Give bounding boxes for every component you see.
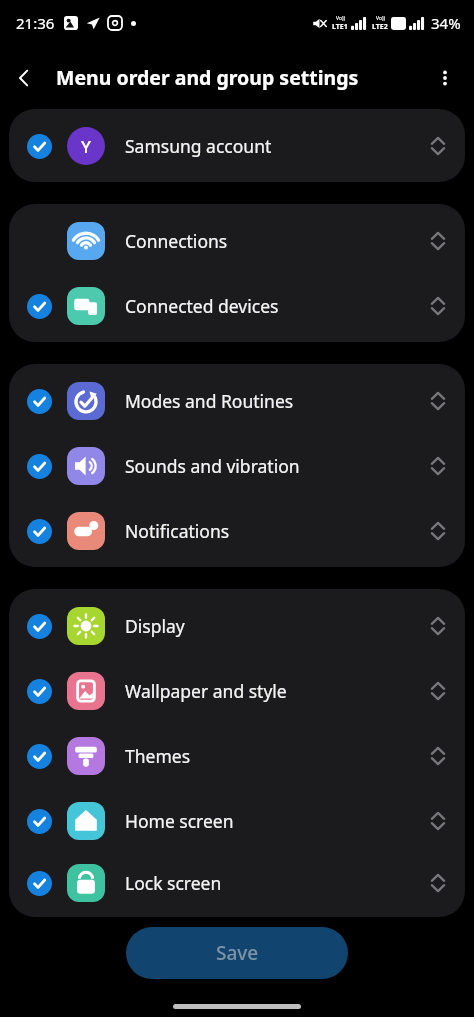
button[interactable]: Notifications: [9, 498, 465, 563]
button[interactable]: Modes and Routines: [9, 368, 465, 433]
button[interactable]: Reorder: [421, 514, 455, 548]
staticText: Connections: [125, 229, 228, 253]
button[interactable]: Home screen: [9, 788, 465, 853]
button[interactable]: Back: [0, 54, 48, 102]
button[interactable]: Reorder: [421, 384, 455, 418]
staticText: Vo)): [376, 15, 385, 22]
button[interactable]: Wallpaper and style: [9, 658, 465, 723]
staticText: LTE2: [372, 22, 388, 32]
staticText: Wallpaper and style: [125, 679, 287, 703]
staticText: Menu order and group settings: [56, 64, 359, 91]
button[interactable]: Reorder: [421, 804, 455, 838]
button[interactable]: Reorder: [421, 866, 455, 900]
staticText: Save: [216, 940, 259, 966]
staticText: Notifications: [125, 519, 230, 543]
button[interactable]: Reorder: [421, 224, 455, 258]
button[interactable]: Connected devices: [9, 273, 465, 338]
button[interactable]: Lock screen: [9, 853, 465, 913]
staticText: Sounds and vibration: [125, 454, 300, 478]
staticText: LTE1: [332, 22, 348, 32]
staticText: 21:36: [16, 13, 55, 33]
button[interactable]: Reorder: [421, 739, 455, 773]
staticText: Y: [81, 135, 91, 158]
staticText: Connected devices: [125, 294, 279, 318]
button[interactable]: Reorder: [421, 289, 455, 323]
button[interactable]: Save: [126, 927, 348, 979]
staticText: Themes: [125, 744, 191, 768]
staticText: Lock screen: [125, 871, 222, 895]
button[interactable]: Themes: [9, 723, 465, 788]
staticText: Home screen: [125, 809, 234, 833]
staticText: Samsung account: [125, 134, 272, 158]
staticText: Modes and Routines: [125, 389, 294, 413]
staticText: 34%: [431, 13, 461, 33]
button[interactable]: Y: [9, 113, 465, 178]
button[interactable]: Reorder: [421, 129, 455, 163]
button[interactable]: Reorder: [421, 674, 455, 708]
staticText: Vo)): [336, 15, 345, 22]
button[interactable]: Reorder: [421, 449, 455, 483]
staticText: Display: [125, 614, 185, 638]
button[interactable]: More options: [422, 55, 468, 101]
button[interactable]: Connections: [9, 208, 465, 273]
button[interactable]: Reorder: [421, 609, 455, 643]
button[interactable]: Sounds and vibration: [9, 433, 465, 498]
button[interactable]: Display: [9, 593, 465, 658]
